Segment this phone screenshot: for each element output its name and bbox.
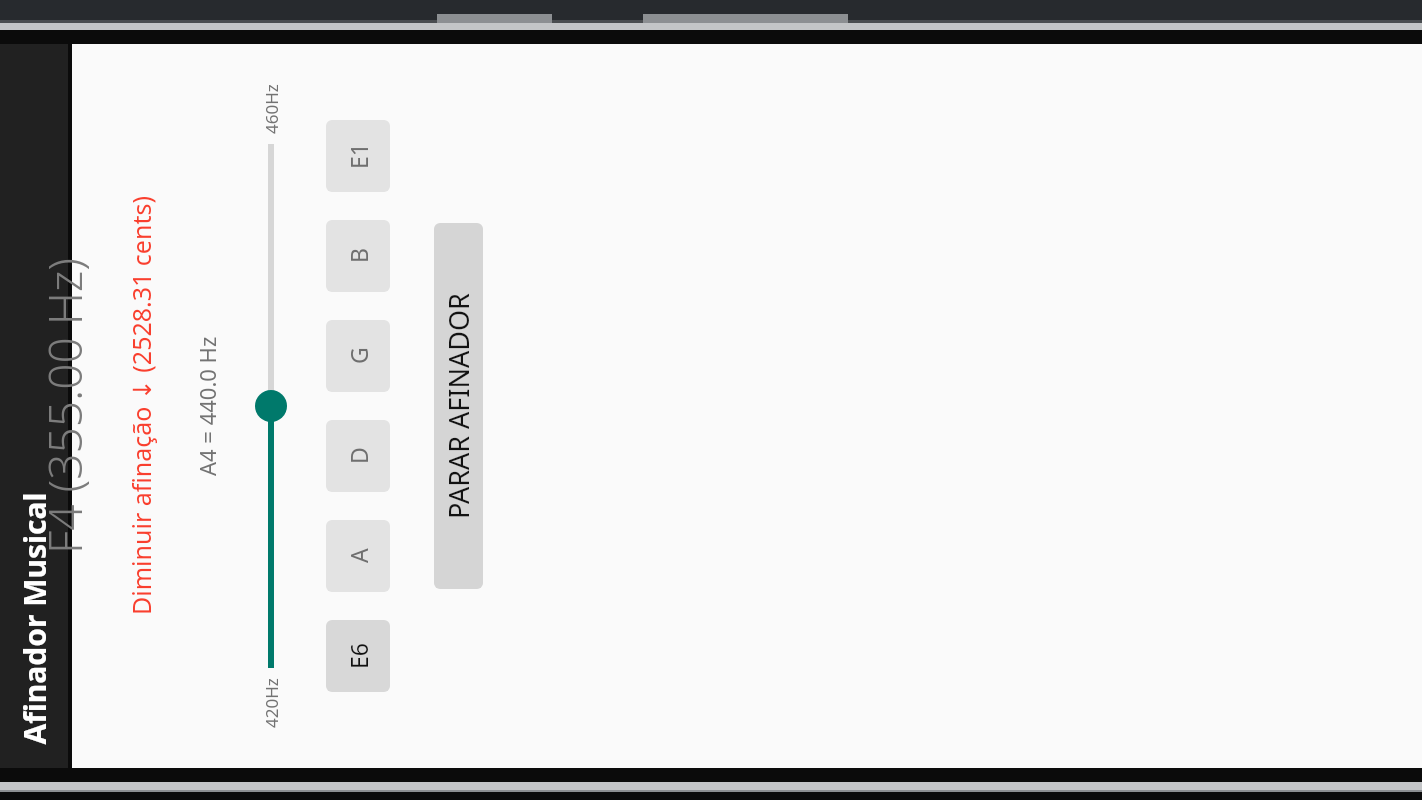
- staticText: D: [343, 447, 374, 464]
- staticText: A4 = 440.0 Hz: [192, 336, 222, 476]
- button[interactable]: D: [326, 420, 390, 492]
- staticText: F4 (355.00 Hz): [33, 257, 96, 554]
- staticText: A: [343, 548, 374, 563]
- button[interactable]: A: [326, 520, 390, 592]
- staticText: E1: [343, 143, 374, 169]
- button[interactable]: E6: [326, 620, 390, 692]
- staticText: PARAR AFINADOR: [440, 293, 477, 519]
- button[interactable]: E1: [326, 120, 390, 192]
- staticText: E6: [343, 643, 374, 669]
- staticText: Diminuir afinação ↓ (2528.31 cents): [124, 196, 158, 615]
- button[interactable]: G: [326, 320, 390, 392]
- button[interactable]: Afinador Musical: [0, 44, 68, 768]
- staticText: 420Hz: [260, 678, 283, 728]
- staticText: B: [343, 248, 374, 263]
- button[interactable]: B: [326, 220, 390, 292]
- button[interactable]: Frequência de referência A4: [236, 134, 306, 678]
- staticText: 460Hz: [260, 84, 283, 134]
- staticText: Afinador Musical: [13, 492, 54, 744]
- button[interactable]: PARAR AFINADOR: [434, 223, 483, 589]
- staticText: G: [343, 347, 374, 364]
